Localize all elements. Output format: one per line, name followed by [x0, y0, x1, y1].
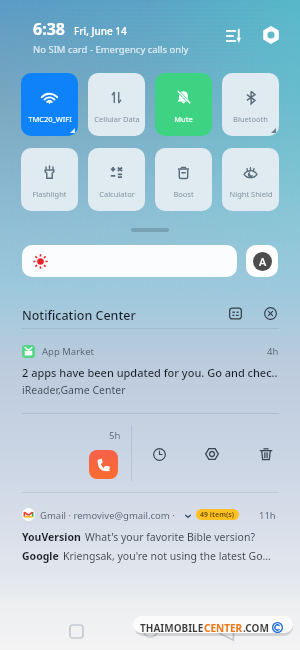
- button[interactable]: Notification Center: [0, 301, 300, 329]
- staticText: App Market: [42, 345, 94, 358]
- staticText: A: [259, 254, 267, 269]
- staticText: Calculator: [99, 189, 135, 199]
- staticText: Cellular Data: [94, 114, 140, 124]
- staticText: iReader,Game Center: [22, 383, 126, 397]
- button[interactable]: Gmail · removive@gmail.com ·: [0, 498, 300, 576]
- staticText: 5h: [109, 429, 121, 442]
- staticText: TMC20_WIFI: [28, 114, 72, 124]
- button[interactable]: Cellular Data: [88, 73, 145, 136]
- button[interactable]: Back: [211, 618, 242, 649]
- button[interactable]: Notification settings: [199, 441, 224, 466]
- button[interactable]: Mute: [155, 73, 212, 136]
- staticText: 6:38: [33, 18, 65, 40]
- button[interactable]: TMC20_WIFI: [21, 73, 78, 136]
- button[interactable]: Edit tiles: [221, 23, 247, 49]
- staticText: Notification Center: [22, 307, 136, 324]
- staticText: Kriengsak, you're not using the latest G…: [63, 549, 271, 563]
- staticText: THAIMOBILE: [140, 621, 204, 635]
- button[interactable]: Home: [135, 614, 166, 645]
- button[interactable]: Calculator: [88, 148, 145, 211]
- button[interactable]: App Market: [0, 333, 300, 412]
- button[interactable]: Delete: [253, 441, 278, 466]
- button[interactable]: Manage notifications: [224, 302, 247, 325]
- staticText: YouVersion: [22, 530, 81, 544]
- button[interactable]: Snooze: [147, 442, 172, 467]
- button[interactable]: Phone: [89, 450, 118, 479]
- staticText: Fri, June 14: [74, 24, 127, 38]
- staticText: 2 apps have been updated for you. Go and…: [22, 365, 278, 380]
- button[interactable]: Boost: [155, 148, 212, 211]
- button[interactable]: Bluetooth: [222, 73, 279, 136]
- button[interactable]: Auto brightness: [246, 245, 278, 277]
- button[interactable]: Brightness: [22, 245, 237, 277]
- staticText: 11h: [259, 509, 276, 522]
- staticText: Gmail · removive@gmail.com ·: [40, 509, 175, 522]
- staticText: Mute: [174, 114, 193, 124]
- staticText: 49 item(s): [200, 510, 235, 520]
- staticText: Google: [22, 549, 59, 563]
- staticText: Bluetooth: [233, 114, 268, 124]
- button[interactable]: Recents: [61, 616, 92, 647]
- staticText: 4h: [267, 345, 279, 358]
- staticText: CENTER: [204, 621, 243, 635]
- button[interactable]: Settings: [258, 22, 284, 48]
- button[interactable]: Clear all notifications: [259, 302, 282, 325]
- staticText: .COM: [243, 621, 269, 635]
- staticText: No SIM card - Emergency calls only: [33, 43, 189, 56]
- staticText: Flashlight: [32, 189, 67, 199]
- staticText: Night Shield: [229, 189, 273, 199]
- button[interactable]: Night Shield: [222, 148, 279, 211]
- staticText: Boost: [173, 189, 194, 199]
- staticText: What's your favorite Bible version?: [85, 530, 255, 544]
- button[interactable]: Flashlight: [21, 148, 78, 211]
